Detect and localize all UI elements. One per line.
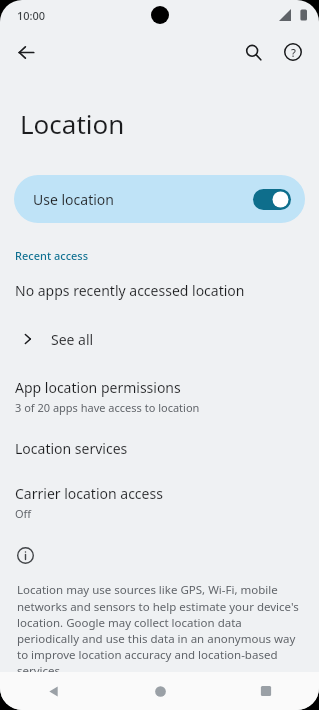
staticText: Location services: [15, 439, 128, 458]
button[interactable]: No apps recently accessed location: [0, 281, 319, 300]
button[interactable]: Back: [0, 672, 106, 710]
staticText: Use location: [33, 190, 114, 209]
staticText: Location may use sources like GPS, Wi-Fi…: [17, 582, 305, 672]
button[interactable]: Carrier location access: [0, 484, 319, 521]
staticText: See all: [51, 330, 94, 349]
button[interactable]: Use location: [14, 175, 305, 223]
staticText: No apps recently accessed location: [15, 281, 245, 300]
staticText: Carrier location access: [15, 484, 163, 503]
button[interactable]: Help: [273, 32, 313, 72]
button[interactable]: Location services: [0, 439, 319, 458]
staticText: App location permissions: [15, 378, 181, 397]
button[interactable]: App location permissions: [0, 378, 319, 415]
button[interactable]: Search: [233, 32, 273, 72]
staticText: ?: [291, 45, 296, 60]
staticText: Recent access: [15, 248, 89, 263]
button[interactable]: Back: [6, 32, 46, 72]
button[interactable]: Recent apps: [213, 672, 319, 710]
button[interactable]: Home: [107, 672, 213, 710]
staticText: Location: [20, 106, 125, 141]
staticText: 10:00: [17, 8, 46, 23]
button[interactable]: See all: [0, 322, 319, 356]
staticText: Off: [15, 506, 32, 521]
staticText: 3 of 20 apps have access to location: [15, 400, 200, 415]
